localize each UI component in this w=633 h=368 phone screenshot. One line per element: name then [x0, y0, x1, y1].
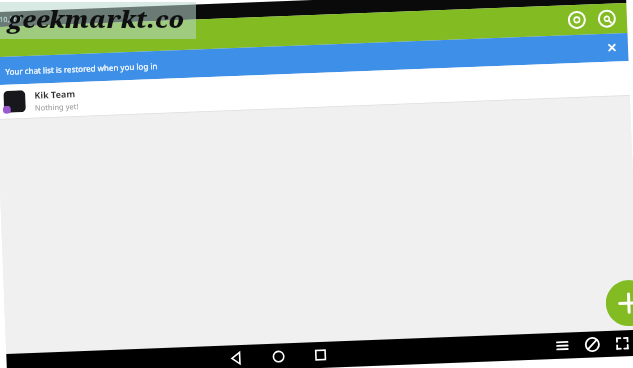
button[interactable]: Talk to — [566, 9, 587, 30]
button[interactable]: New chat — [605, 279, 633, 327]
staticText: Nothing yet! — [35, 101, 79, 113]
button[interactable]: Home — [265, 343, 292, 368]
button[interactable]: Fullscreen — [611, 332, 633, 355]
button[interactable]: Menu — [551, 334, 574, 357]
staticText: Your chat list is restored when you log … — [5, 43, 604, 77]
staticText: geekmarkt.com — [0, 2, 196, 39]
button[interactable]: Your chat list is restored when you log … — [0, 33, 628, 85]
button[interactable]: Dismiss — [604, 39, 620, 56]
button[interactable]: Back — [223, 345, 250, 368]
button[interactable]: Recent apps — [307, 341, 334, 368]
button[interactable]: Kik Team — [0, 61, 630, 119]
button[interactable]: Find people — [596, 8, 617, 29]
staticText: Kik Team — [34, 87, 75, 101]
button[interactable]: Rotate — [581, 333, 604, 356]
staticText: 10,560 — [0, 14, 22, 25]
